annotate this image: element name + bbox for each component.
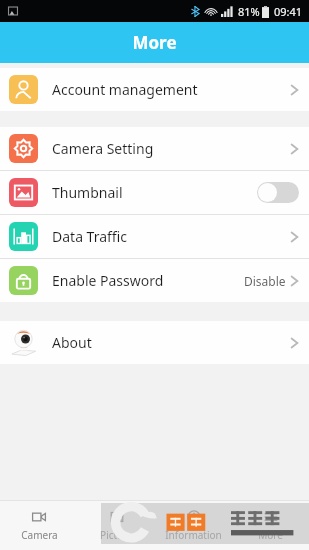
button[interactable]: Thumbnail [0,171,309,214]
button[interactable]: Information [155,501,232,550]
staticText: Camera [21,528,58,542]
staticText: More [132,31,177,54]
staticText: Data Traffic [52,227,290,246]
button[interactable]: Data Traffic [0,215,309,258]
button[interactable]: Camera Setting [0,127,309,170]
button[interactable]: Account management [0,68,309,111]
staticText: Picture [100,528,133,542]
other: More [263,509,279,525]
button[interactable]: Picture [78,501,155,550]
staticText: Account management [52,80,290,99]
staticText: Camera Setting [52,139,290,158]
button[interactable]: Enable Password [0,259,309,302]
staticText: Enable Password [52,271,244,290]
staticText: 09:41 [274,4,303,19]
button[interactable]: Thumbnail toggle [257,182,299,203]
staticText: Information [165,528,222,542]
staticText: Disable [244,273,286,289]
staticText: 81% [238,4,260,19]
button[interactable]: About [0,321,309,364]
button[interactable]: Camera [0,501,78,550]
other: Information [186,509,202,525]
other: Camera [31,509,47,525]
other: Picture [109,509,125,525]
staticText: Thumbnail [52,183,257,202]
staticText: More [258,528,283,542]
staticText: About [52,333,290,352]
button[interactable]: More [232,501,309,550]
